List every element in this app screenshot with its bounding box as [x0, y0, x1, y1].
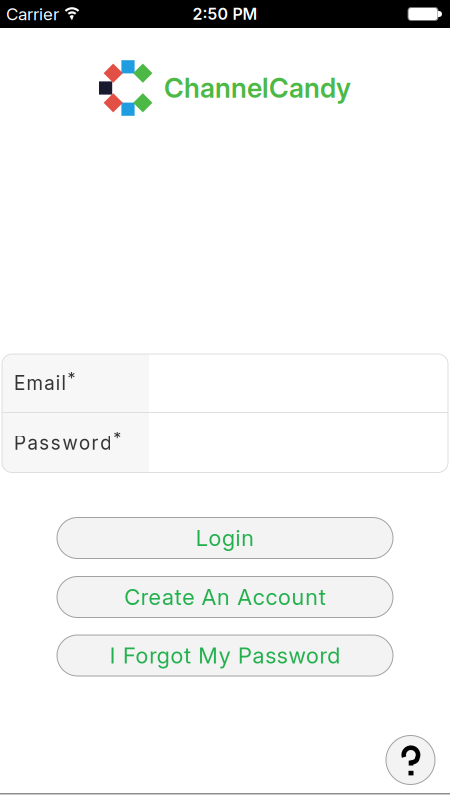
staticText: I Forgot My Password — [110, 642, 340, 668]
staticText: Email — [14, 372, 65, 394]
button[interactable]: Help — [386, 735, 435, 784]
button[interactable]: I Forgot My Password — [57, 635, 393, 676]
staticText: ChannelCandy — [164, 72, 351, 104]
staticText: Login — [196, 525, 254, 551]
staticText: * — [113, 428, 121, 447]
button[interactable]: Login — [57, 517, 393, 558]
staticText: Password — [14, 431, 111, 454]
staticText: * — [67, 369, 75, 387]
staticText: Create An Account — [124, 584, 326, 610]
staticText: 2:50 PM — [192, 5, 257, 23]
button[interactable]: Create An Account — [57, 576, 393, 617]
staticText: Carrier — [6, 4, 59, 24]
